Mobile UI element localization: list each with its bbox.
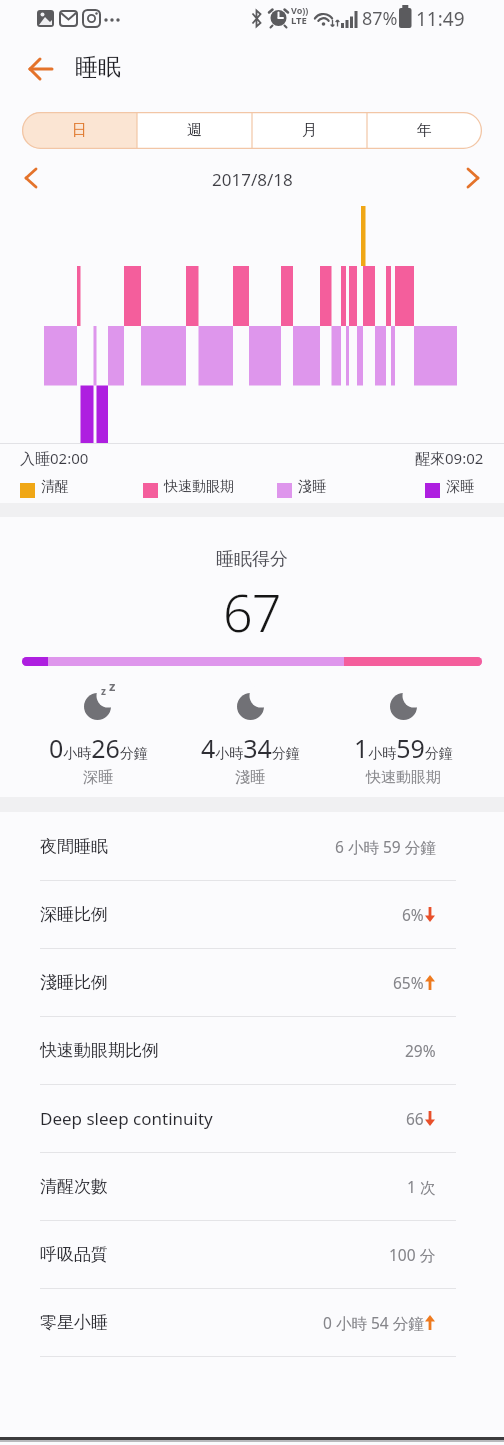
button[interactable]: 快速動眼期比例 (0, 1016, 504, 1084)
button[interactable]: 清醒次數 (0, 1152, 504, 1220)
staticText: 睡眠 (75, 53, 121, 82)
staticText: 1 次 (407, 1176, 436, 1197)
staticText: 快速動眼期比例 (40, 1040, 159, 1061)
button[interactable]: Deep sleep continuity (0, 1084, 504, 1152)
button[interactable] (14, 48, 60, 90)
button[interactable]: 夜間睡眠 (0, 812, 504, 880)
button[interactable] (16, 162, 48, 194)
staticText: LTE (291, 14, 307, 27)
staticText: 呼吸品質 (40, 1244, 108, 1265)
staticText: 月 (302, 121, 317, 140)
staticText: 深睡 (83, 768, 113, 787)
staticText: Vo)) (291, 4, 309, 16)
staticText: 日 (72, 121, 87, 140)
staticText: 淺睡 (298, 478, 326, 496)
staticText: 快速動眼期 (366, 768, 441, 787)
staticText: z (101, 684, 106, 698)
staticText: 夜間睡眠 (40, 836, 108, 857)
button[interactable]: 日 (22, 112, 137, 149)
staticText: 0 小時 54 分鐘 (323, 1312, 424, 1333)
staticText: 11:49 (416, 6, 465, 32)
button[interactable]: 呼吸品質 (0, 1220, 504, 1288)
button[interactable]: 零星小睡 (0, 1288, 504, 1356)
staticText: 67 (223, 576, 281, 647)
staticText: 29% (405, 1040, 436, 1061)
staticText: 87% (362, 6, 398, 31)
staticText: 清醒次數 (40, 1176, 108, 1197)
staticText: 100 分 (389, 1244, 436, 1265)
staticText: 2017/8/18 (212, 168, 293, 191)
staticText: 清醒 (41, 478, 69, 496)
button[interactable]: 週 (137, 112, 252, 149)
staticText: 1小時59分鐘 (354, 731, 453, 765)
staticText: 0小時26分鐘 (49, 731, 148, 765)
staticText: 6% (402, 904, 424, 925)
staticText: 快速動眼期 (164, 478, 234, 496)
staticText: 6 小時 59 分鐘 (335, 836, 436, 857)
staticText: 醒來09:02 (415, 448, 484, 468)
button[interactable]: 淺睡比例 (0, 948, 504, 1016)
staticText: 零星小睡 (40, 1312, 108, 1333)
button[interactable]: 年 (367, 112, 482, 149)
staticText: 66 (406, 1108, 424, 1129)
staticText: 65% (393, 972, 424, 993)
staticText: 週 (187, 121, 202, 140)
staticText: z (109, 677, 116, 695)
staticText: 淺睡比例 (40, 972, 108, 993)
button[interactable] (456, 162, 488, 194)
staticText: 睡眠得分 (216, 548, 288, 571)
button[interactable]: 月 (252, 112, 367, 149)
staticText: 入睡02:00 (20, 448, 89, 468)
staticText: 深睡比例 (40, 904, 108, 925)
staticText: 淺睡 (235, 768, 265, 787)
staticText: 深睡 (446, 478, 474, 496)
staticText: 年 (417, 121, 432, 140)
button[interactable]: 深睡比例 (0, 880, 504, 948)
staticText: Deep sleep continuity (40, 1107, 213, 1130)
staticText: 4小時34分鐘 (201, 731, 300, 765)
